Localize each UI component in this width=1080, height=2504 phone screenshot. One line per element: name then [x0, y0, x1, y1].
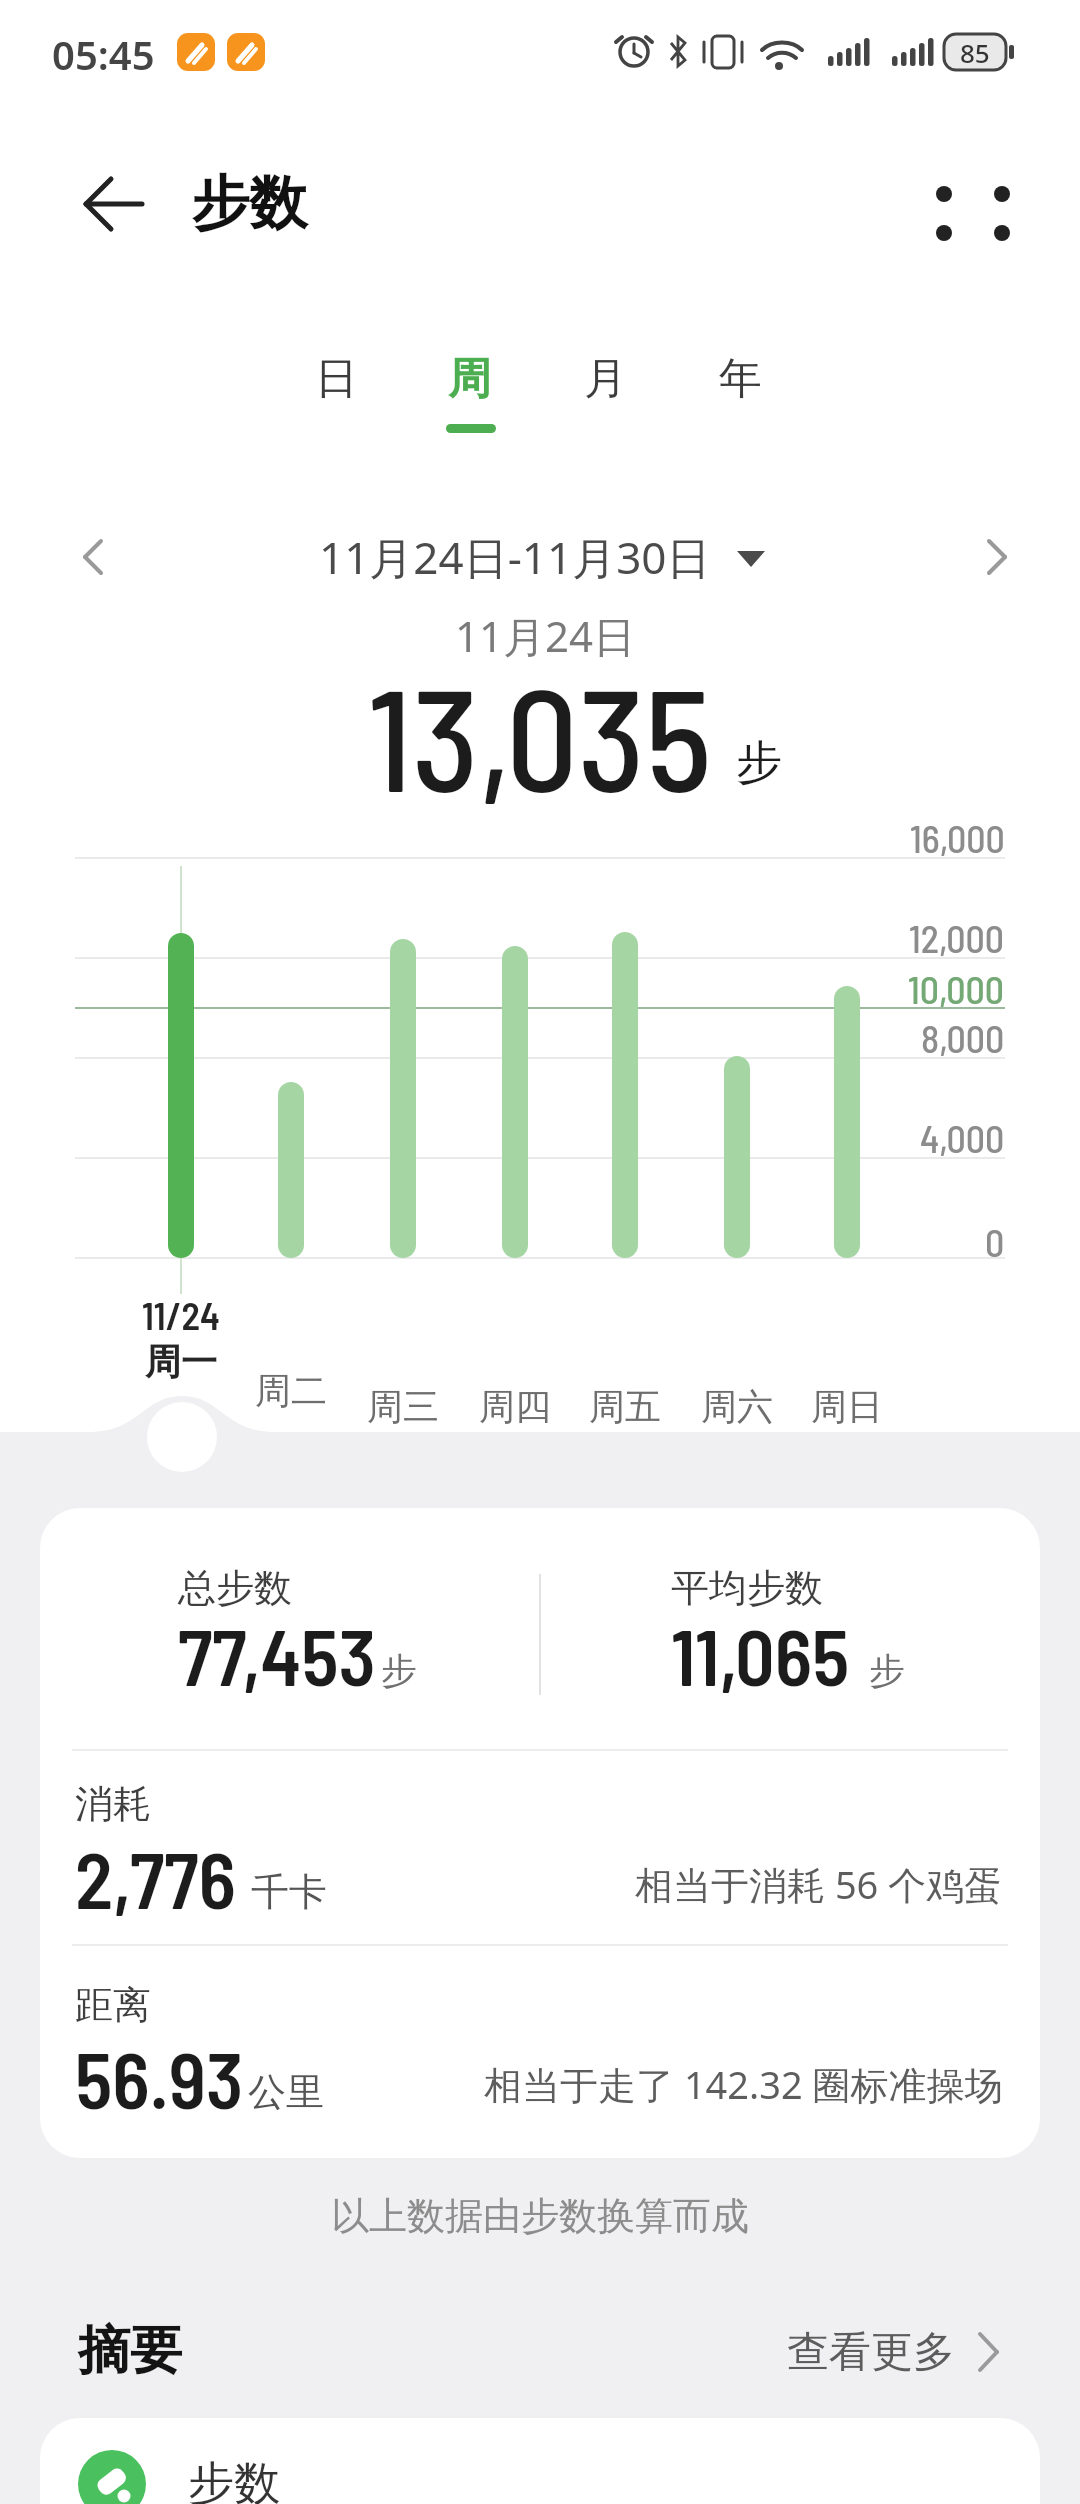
- staticText: 摘要: [78, 2318, 182, 2384]
- staticText: 距离: [75, 1981, 151, 2029]
- staticText: 8,000: [921, 1015, 1005, 1061]
- staticText: 56.93: [75, 2031, 244, 2125]
- staticText: 步: [869, 1648, 905, 1693]
- button[interactable]: [40, 2418, 1040, 2504]
- staticText: 11/24: [142, 1292, 220, 1338]
- staticText: 周: [448, 352, 491, 406]
- staticText: 步: [381, 1648, 417, 1693]
- staticText: 日: [315, 352, 358, 406]
- staticText: 月: [584, 352, 627, 406]
- button[interactable]: 查看更多: [255, 2310, 955, 2394]
- staticText: 05:45: [52, 27, 155, 81]
- staticText: 77,453: [178, 1608, 376, 1702]
- staticText: 总步数: [178, 1564, 292, 1612]
- staticText: 16,000: [910, 815, 1005, 861]
- button[interactable]: [60, 525, 130, 591]
- button[interactable]: [920, 170, 1030, 250]
- staticText: 相当于走了 142.32 圈标准操场: [484, 2058, 1003, 2110]
- staticText: 12,000: [909, 915, 1005, 961]
- staticText: 步数: [191, 167, 307, 240]
- staticText: 0: [985, 1219, 1005, 1265]
- staticText: 10,000: [908, 966, 1005, 1012]
- staticText: 查看更多: [787, 2326, 955, 2379]
- button[interactable]: [70, 170, 160, 240]
- staticText: 平均步数: [671, 1564, 823, 1612]
- staticText: 4,000: [920, 1115, 1005, 1161]
- staticText: 11月24日-11月30日: [319, 527, 711, 587]
- staticText: 相当于消耗 56 个鸡蛋: [635, 1858, 1003, 1910]
- button[interactable]: [960, 525, 1030, 591]
- staticText: 以上数据由步数换算而成: [331, 2192, 749, 2240]
- button[interactable]: 年: [680, 336, 800, 422]
- staticText: 周日: [811, 1384, 883, 1429]
- staticText: 85: [960, 35, 990, 70]
- staticText: 消耗: [75, 1780, 151, 1828]
- staticText: 步数: [188, 2455, 280, 2504]
- staticText: 13,035: [368, 650, 712, 820]
- button[interactable]: 月: [545, 336, 665, 422]
- staticText: 步: [736, 734, 782, 792]
- staticText: 千卡: [251, 1868, 327, 1916]
- staticText: 周五: [589, 1384, 661, 1429]
- staticText: 周一: [145, 1339, 217, 1384]
- button[interactable]: 周: [409, 336, 529, 422]
- staticText: 公里: [248, 2068, 324, 2116]
- staticText: 周四: [479, 1384, 551, 1429]
- button[interactable]: 日: [276, 336, 396, 422]
- button[interactable]: 11月24日-11月30日: [115, 513, 915, 601]
- staticText: 年: [719, 352, 762, 406]
- staticText: 2,776: [75, 1831, 236, 1925]
- staticText: 周二: [255, 1368, 327, 1413]
- staticText: 周六: [701, 1384, 773, 1429]
- staticText: 周三: [367, 1384, 439, 1429]
- staticText: 11月24日: [455, 607, 636, 664]
- staticText: 11,065: [671, 1608, 850, 1702]
